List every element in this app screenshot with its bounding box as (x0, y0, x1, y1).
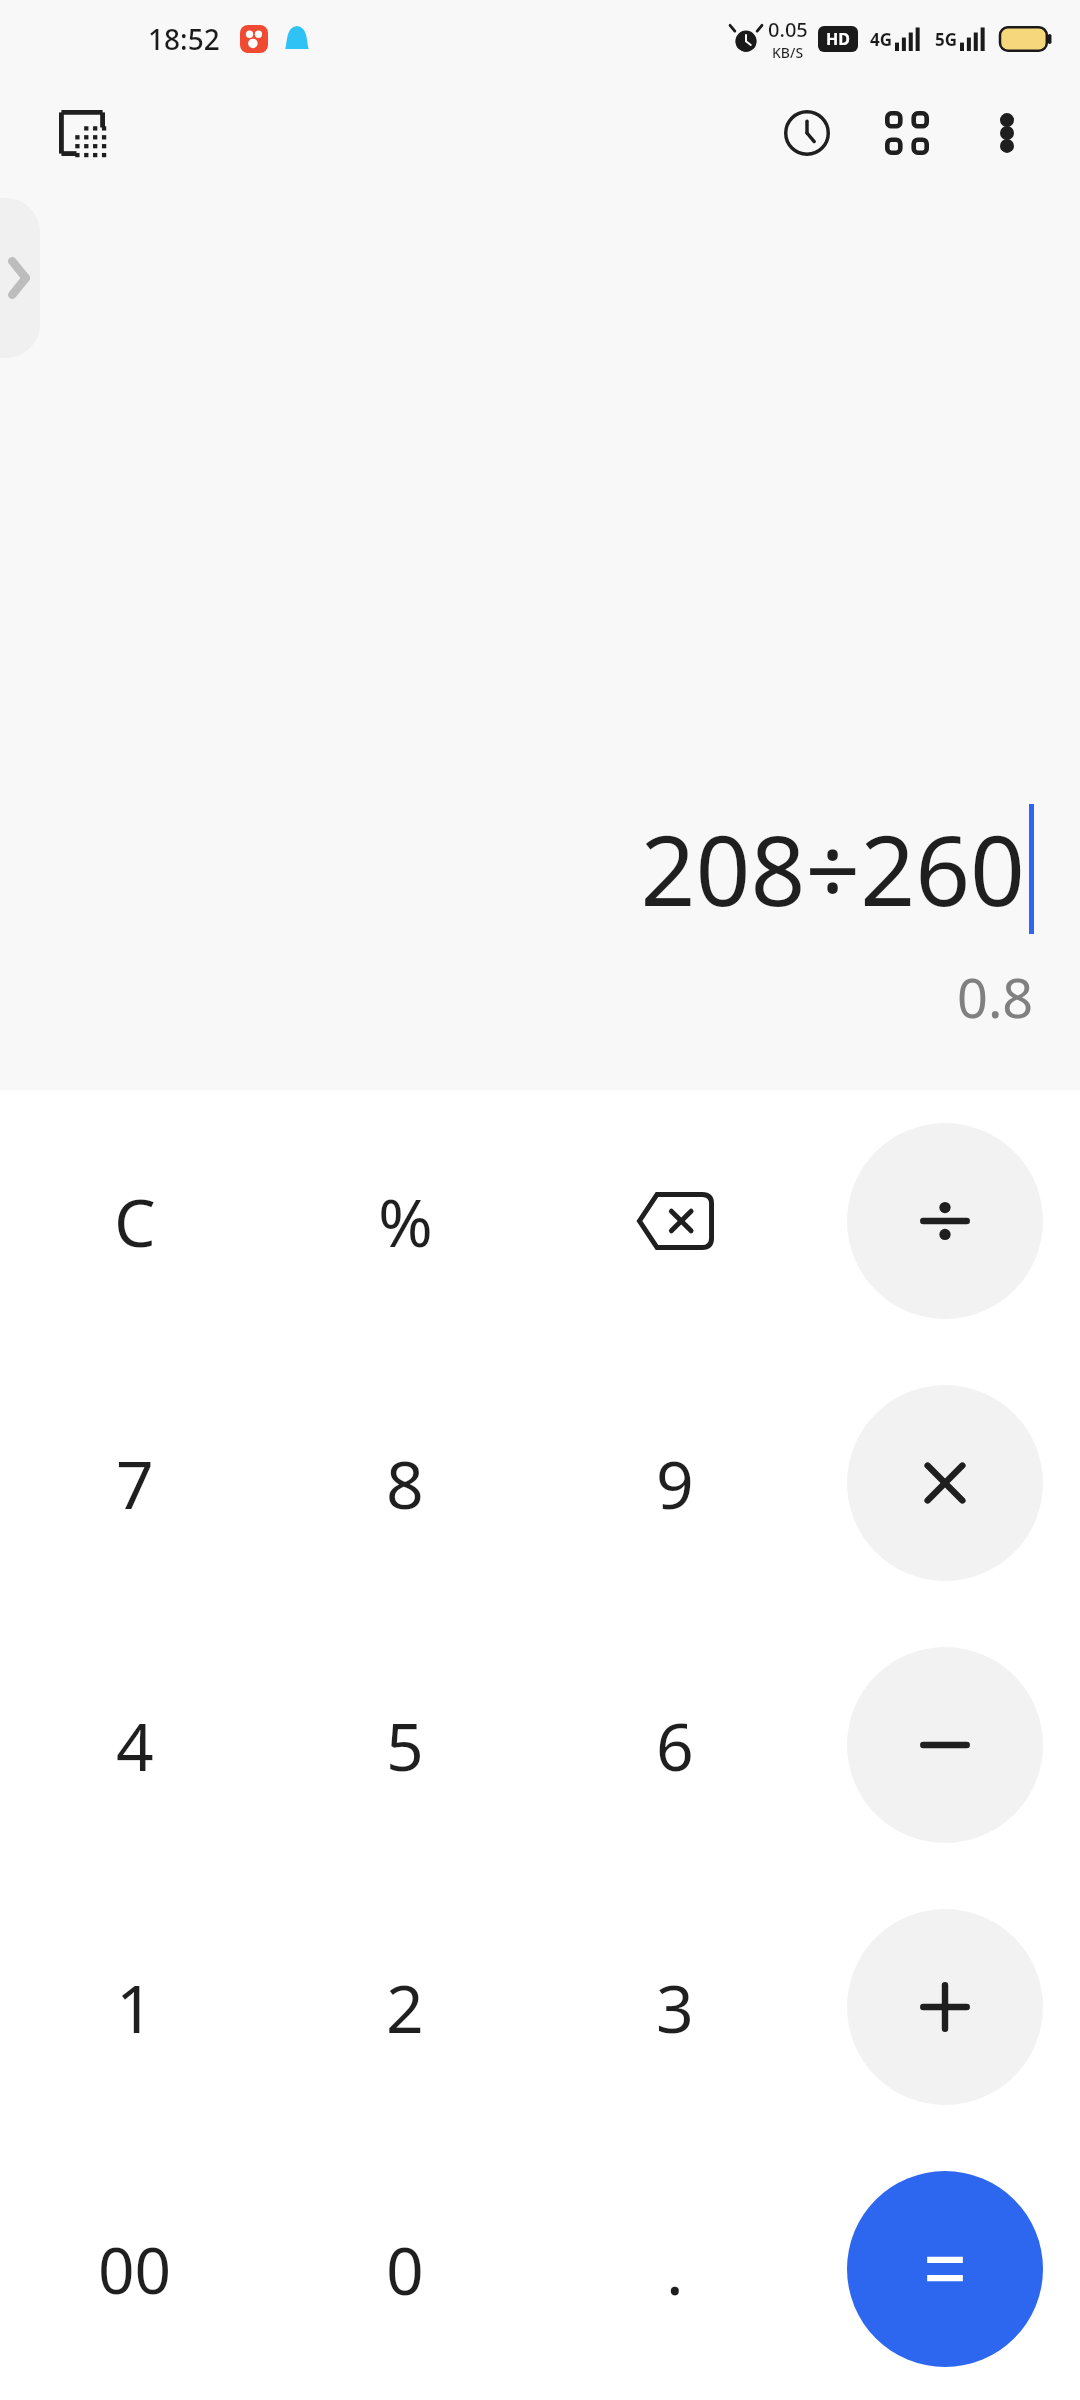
button[interactable]: Backspace (540, 1090, 810, 1352)
staticText: 7 (116, 1438, 154, 1528)
staticText: 6 (656, 1700, 694, 1790)
staticText: 1 (116, 1962, 154, 2052)
staticText: 3 (656, 1962, 694, 2052)
button[interactable]: More options (964, 90, 1050, 176)
button[interactable]: . (540, 2138, 810, 2400)
button[interactable]: 6 (540, 1614, 810, 1876)
button[interactable]: % (270, 1090, 540, 1352)
button[interactable]: 4 (0, 1614, 270, 1876)
staticText: 0 (386, 2224, 424, 2314)
button[interactable]: 8 (270, 1352, 540, 1614)
staticText: 8 (386, 1438, 424, 1528)
staticText: 0.05 (768, 16, 808, 43)
staticText: % (378, 1176, 433, 1266)
button[interactable]: 3 (540, 1876, 810, 2138)
staticText: 0.8 (957, 960, 1034, 1034)
button[interactable]: Equals (810, 2138, 1080, 2400)
staticText: C (114, 1176, 156, 1266)
staticText: HD (826, 28, 850, 50)
button[interactable] (810, 1614, 1080, 1876)
button[interactable]: 00 (0, 2138, 270, 2400)
staticText: 208÷260 (640, 803, 1025, 934)
staticText: 4G (870, 28, 893, 51)
staticText: 5G (935, 28, 958, 51)
button[interactable]: 0 (270, 2138, 540, 2400)
button[interactable] (810, 1090, 1080, 1352)
button[interactable] (810, 1876, 1080, 2138)
staticText: 5 (386, 1700, 424, 1790)
button[interactable]: 7 (0, 1352, 270, 1614)
button[interactable]: 9 (540, 1352, 810, 1614)
staticText: . (666, 2224, 684, 2314)
button[interactable]: Floating window (44, 95, 120, 171)
staticText: 00 (98, 2226, 172, 2313)
button[interactable]: 2 (270, 1876, 540, 2138)
other: Backspace (577, 1123, 773, 1319)
staticText: KB/S (772, 43, 804, 62)
button[interactable]: Open side panel (0, 198, 40, 358)
button[interactable]: C (0, 1090, 270, 1352)
staticText: 2 (386, 1962, 424, 2052)
button[interactable]: History (764, 90, 850, 176)
staticText: 4 (116, 1700, 154, 1790)
button[interactable]: 1 (0, 1876, 270, 2138)
button[interactable]: Converter (864, 90, 950, 176)
button[interactable]: 5 (270, 1614, 540, 1876)
staticText: 18:52 (148, 20, 220, 58)
staticText: 9 (656, 1438, 694, 1528)
other: Equals (847, 2171, 1043, 2367)
button[interactable] (810, 1352, 1080, 1614)
